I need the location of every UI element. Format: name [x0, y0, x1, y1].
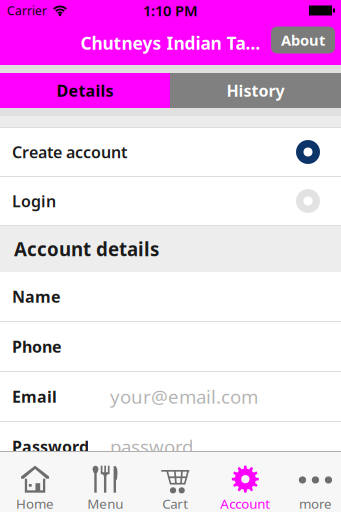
staticText: Password	[12, 436, 89, 457]
button[interactable]: Home	[0, 452, 70, 512]
staticText: Phone	[12, 336, 62, 357]
staticText: Details	[56, 80, 113, 101]
staticText: Account	[220, 495, 270, 512]
staticText: Email	[12, 386, 57, 407]
button[interactable]: Login	[0, 177, 341, 225]
button[interactable]: Details	[0, 73, 170, 108]
staticText: Create account	[12, 141, 127, 163]
button[interactable]: About	[271, 26, 335, 53]
staticText: Account details	[14, 237, 159, 261]
staticText: Cart	[162, 495, 188, 512]
staticText: History	[226, 80, 284, 101]
staticText: About	[281, 30, 325, 50]
button[interactable]: Create account	[0, 128, 341, 176]
button[interactable]: Account	[210, 452, 280, 512]
staticText: Chutneys Indian Ta…	[80, 31, 260, 54]
staticText: Name	[12, 286, 61, 307]
staticText: Menu	[87, 495, 123, 512]
staticText: Carrier	[7, 2, 47, 18]
staticText: Home	[16, 495, 54, 512]
staticText: Login	[12, 190, 56, 212]
button[interactable]: Cart	[140, 452, 210, 512]
staticText: more	[299, 495, 332, 512]
button[interactable]: Menu	[70, 452, 140, 512]
button[interactable]: History	[170, 73, 341, 108]
button[interactable]: more	[280, 452, 341, 512]
staticText: your@email.com	[110, 384, 258, 409]
staticText: 1:10 PM	[143, 1, 198, 20]
staticText: password	[110, 434, 193, 459]
